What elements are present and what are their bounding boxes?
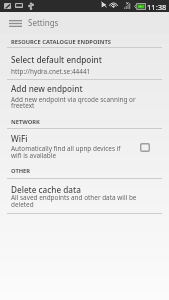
button[interactable] — [0, 48, 169, 79]
button[interactable] — [0, 179, 169, 213]
staticText: All saved endpoints and other data will … — [11, 193, 137, 202]
staticText: 11:38 — [147, 2, 167, 12]
staticText: Select default endpoint — [11, 54, 102, 65]
staticText: OTHER — [11, 167, 31, 175]
staticText: RESOURCE CATALOGUE ENDPOINTS — [11, 38, 111, 46]
button[interactable] — [0, 79, 169, 112]
staticText: WiFi — [11, 133, 28, 144]
staticText: deleted — [11, 200, 34, 209]
staticText: Delete cache data — [11, 184, 81, 195]
button[interactable] — [0, 129, 169, 160]
staticText: NETWORK — [11, 118, 40, 126]
staticText: http://hydra.cnet.se:44441 — [11, 67, 91, 76]
staticText: freetext — [11, 101, 35, 110]
staticText: Add new endpoint via qrcode scanning or — [11, 95, 136, 104]
staticText: Settings — [28, 17, 59, 28]
button[interactable]: Navigation drawer — [3, 12, 27, 34]
staticText: Automatically find all upnp devices if — [11, 144, 121, 153]
staticText: wifi is available — [11, 151, 57, 160]
button[interactable]: WiFi enabled — [138, 140, 152, 154]
staticText: Add new endpoint — [11, 83, 83, 94]
